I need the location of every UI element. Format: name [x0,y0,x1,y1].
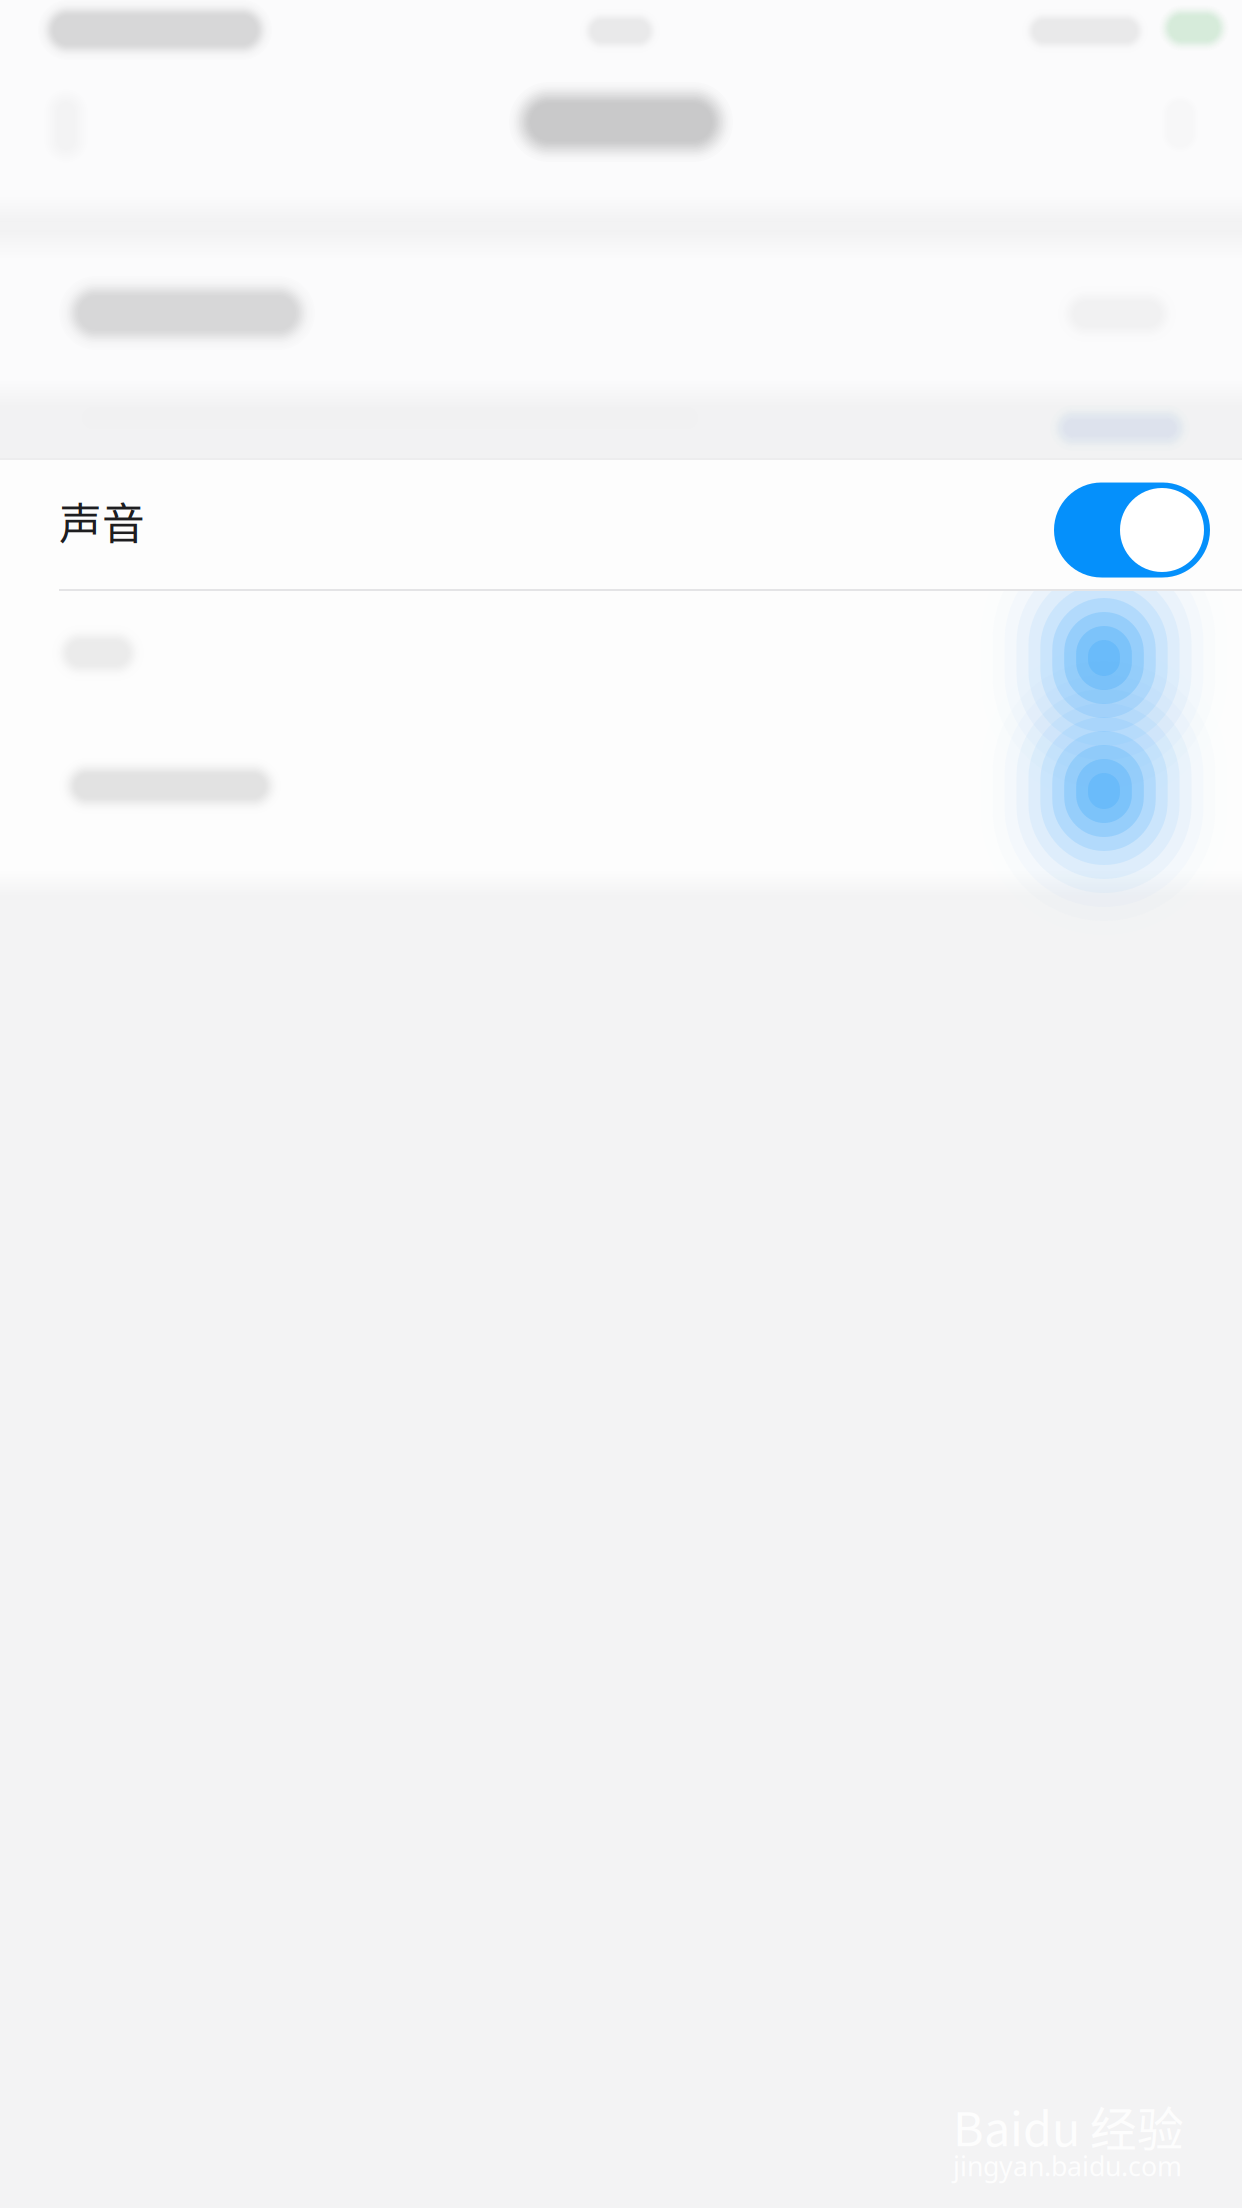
staticText: 声音 [59,490,145,552]
staticText: Baidu 经验 [953,2092,1184,2160]
button[interactable]: 声音 [0,459,1242,591]
staticText: jingyan.baidu.com [953,2148,1182,2184]
